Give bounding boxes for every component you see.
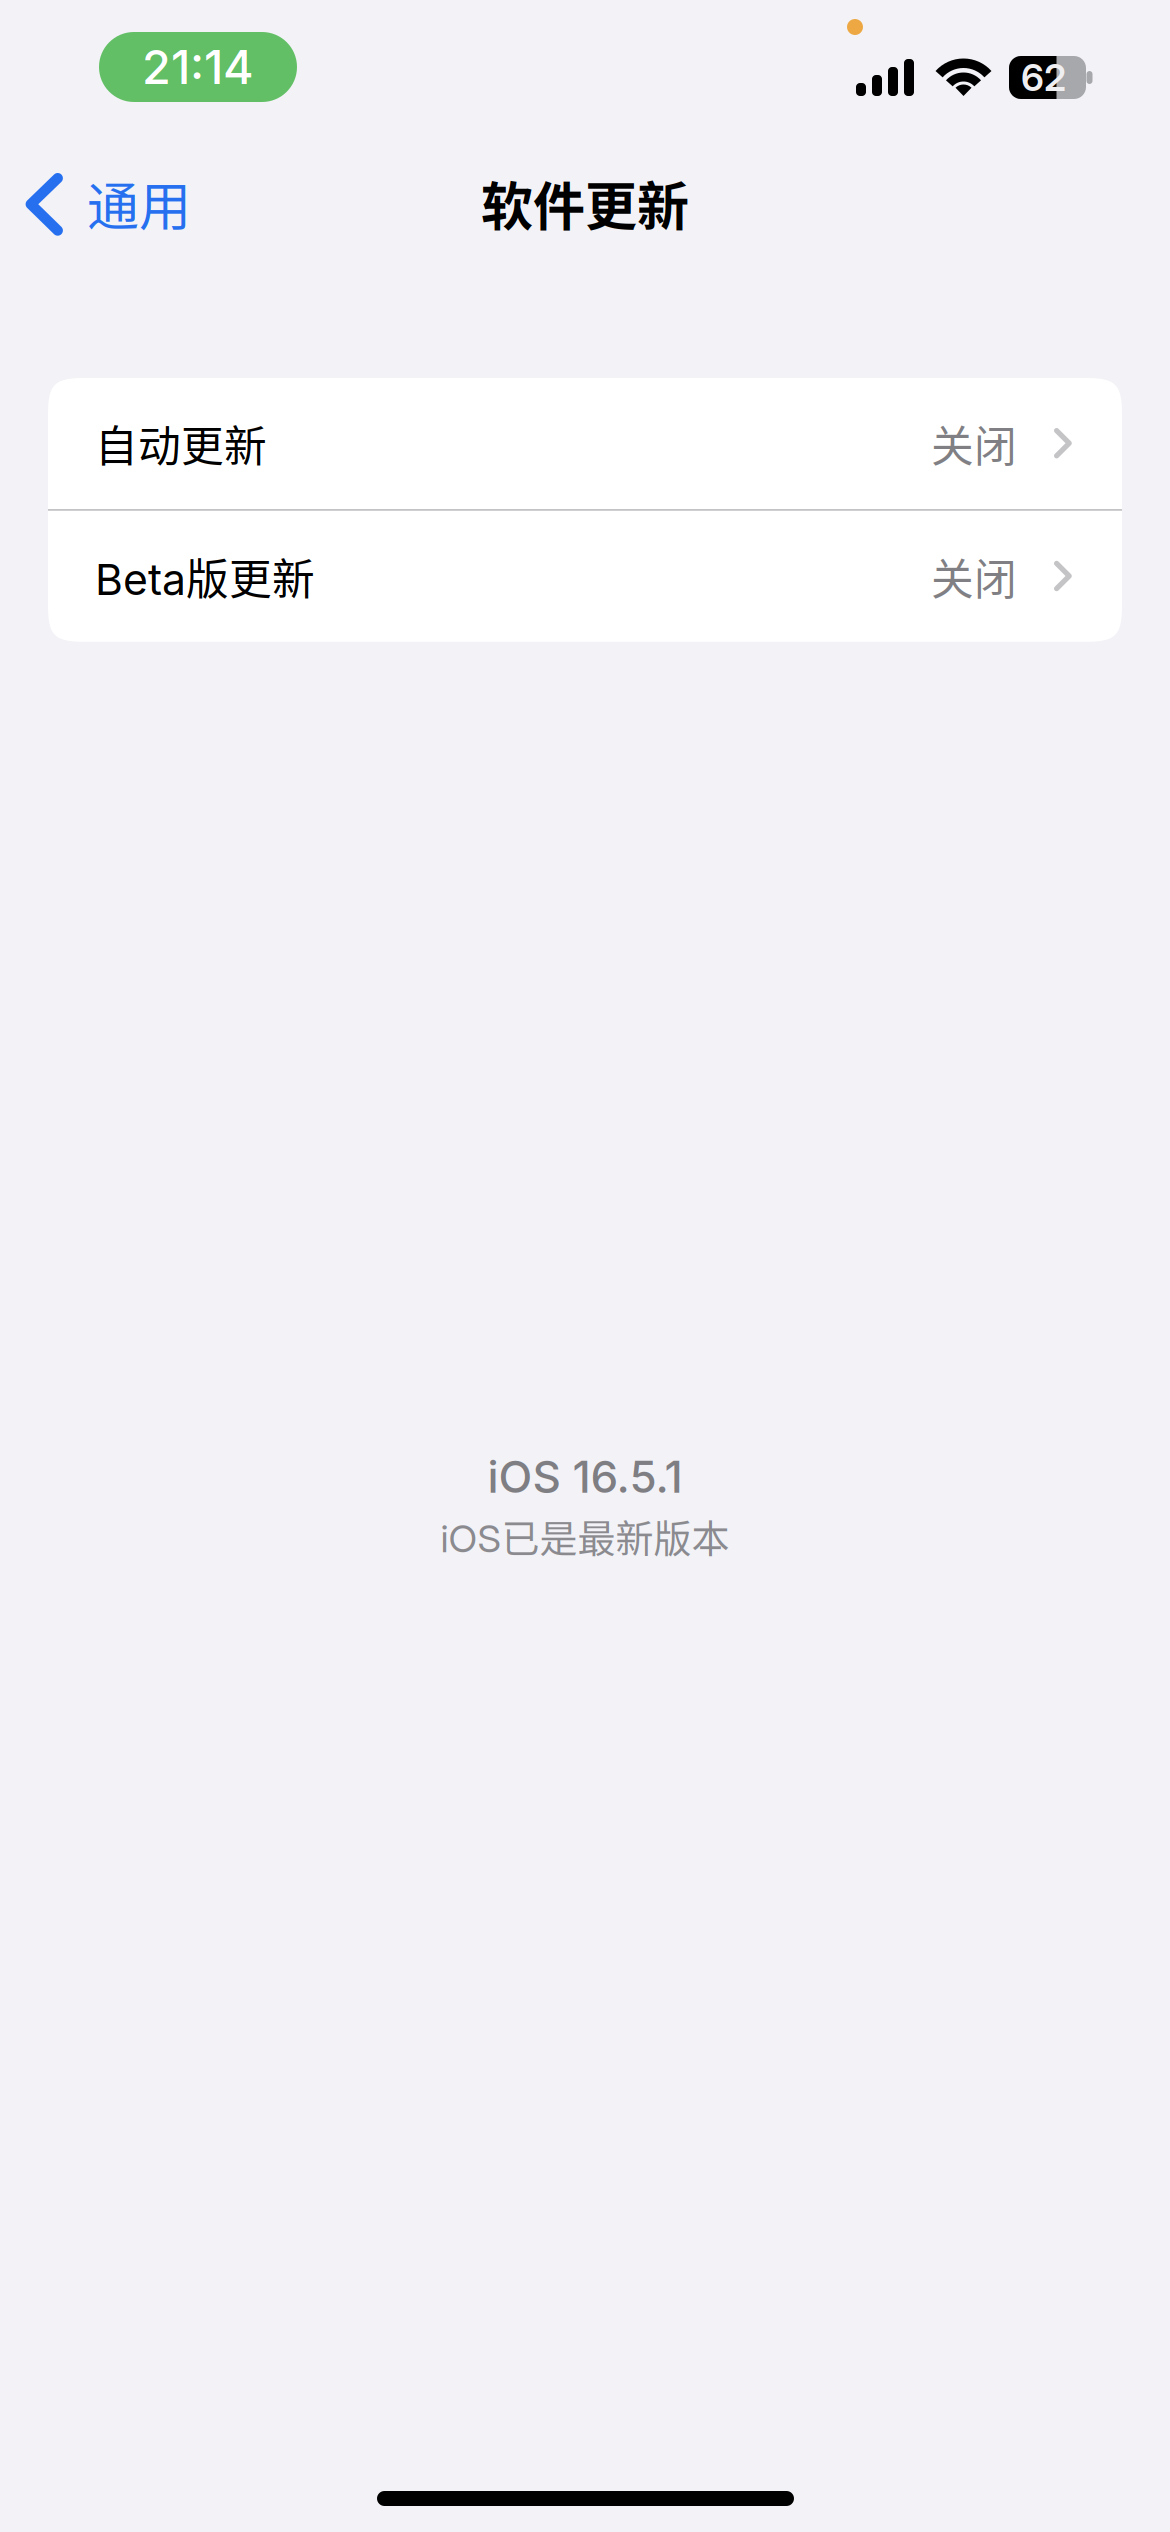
button[interactable]: Beta版更新 [48, 511, 1122, 642]
staticText: 自动更新 [95, 413, 267, 474]
staticText: iOS已是最新版本 [440, 1508, 729, 1563]
staticText: 21:14 [142, 39, 254, 95]
staticText: Beta版更新 [95, 545, 315, 607]
staticText: 软件更新 [481, 165, 689, 241]
staticText: 关闭 [931, 413, 1017, 474]
staticText: 通用 [87, 165, 191, 241]
staticText: 62 [1021, 55, 1066, 100]
button[interactable]: 通用 [0, 148, 215, 258]
staticText: 关闭 [931, 545, 1017, 607]
button[interactable]: 自动更新 [48, 378, 1122, 509]
staticText: iOS 16.5.1 [487, 1450, 682, 1503]
